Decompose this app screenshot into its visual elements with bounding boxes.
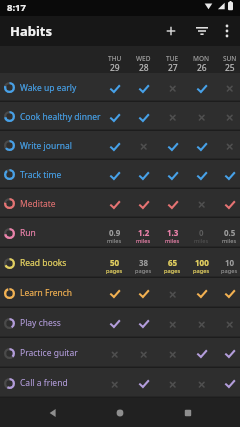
- staticText: 65: [168, 257, 178, 268]
- button[interactable]: [215, 189, 240, 218]
- button[interactable]: 0.9: [100, 218, 129, 248]
- button[interactable]: [100, 131, 129, 160]
- button[interactable]: 100: [187, 248, 216, 278]
- button[interactable]: 1.3: [158, 218, 187, 248]
- button[interactable]: [129, 368, 158, 398]
- staticText: miles: [165, 237, 180, 245]
- button[interactable]: 10: [215, 248, 240, 278]
- button[interactable]: Wake up early: [0, 73, 240, 102]
- staticText: SUN: [223, 54, 237, 63]
- button[interactable]: 1.2: [129, 218, 158, 248]
- staticText: 1.2: [138, 227, 150, 238]
- staticText: pages: [164, 267, 181, 275]
- button[interactable]: Read books: [0, 248, 240, 278]
- button[interactable]: [42, 402, 64, 424]
- button[interactable]: [215, 368, 240, 398]
- button[interactable]: [158, 308, 187, 338]
- button[interactable]: Track time: [0, 160, 240, 189]
- button[interactable]: [215, 102, 240, 131]
- button[interactable]: [187, 368, 216, 398]
- button[interactable]: [109, 402, 131, 424]
- staticText: WED: [136, 54, 151, 63]
- staticText: 50: [110, 257, 120, 268]
- button[interactable]: [100, 278, 129, 308]
- button[interactable]: [187, 189, 216, 218]
- button[interactable]: [215, 308, 240, 338]
- staticText: Cook healthy dinner: [20, 111, 101, 123]
- staticText: Meditate: [20, 198, 56, 210]
- staticText: 0: [199, 227, 204, 238]
- button[interactable]: [158, 131, 187, 160]
- button[interactable]: [100, 308, 129, 338]
- button[interactable]: [187, 338, 216, 368]
- button[interactable]: [129, 278, 158, 308]
- button[interactable]: 0.5: [215, 218, 240, 248]
- button[interactable]: [215, 73, 240, 102]
- button[interactable]: [129, 189, 158, 218]
- button[interactable]: Play chess: [0, 308, 240, 338]
- button[interactable]: [100, 102, 129, 131]
- button[interactable]: [159, 19, 183, 43]
- button[interactable]: [100, 189, 129, 218]
- staticText: Run: [20, 227, 36, 239]
- button[interactable]: [158, 368, 187, 398]
- staticText: MON: [193, 54, 210, 63]
- button[interactable]: [129, 308, 158, 338]
- button[interactable]: [215, 338, 240, 368]
- button[interactable]: Learn French: [0, 278, 240, 308]
- button[interactable]: [158, 160, 187, 189]
- staticText: Wake up early: [20, 82, 77, 94]
- button[interactable]: [187, 278, 216, 308]
- button[interactable]: [158, 189, 187, 218]
- button[interactable]: [158, 278, 187, 308]
- button[interactable]: [187, 160, 216, 189]
- button[interactable]: [158, 338, 187, 368]
- button[interactable]: 65: [158, 248, 187, 278]
- button[interactable]: 38: [129, 248, 158, 278]
- staticText: TUE: [166, 54, 179, 63]
- button[interactable]: [187, 308, 216, 338]
- button[interactable]: [129, 102, 158, 131]
- button[interactable]: [100, 368, 129, 398]
- button[interactable]: Call a friend: [0, 368, 240, 398]
- button[interactable]: [190, 19, 214, 43]
- staticText: 0.5: [224, 227, 236, 238]
- staticText: Play chess: [20, 317, 61, 329]
- button[interactable]: [215, 19, 239, 43]
- button[interactable]: Run: [0, 218, 240, 248]
- button[interactable]: [129, 73, 158, 102]
- button[interactable]: [129, 338, 158, 368]
- button[interactable]: [215, 160, 240, 189]
- button[interactable]: [215, 131, 240, 160]
- button[interactable]: [129, 131, 158, 160]
- button[interactable]: [100, 73, 129, 102]
- staticText: Practice guitar: [20, 347, 78, 359]
- staticText: miles: [222, 237, 237, 245]
- button[interactable]: [158, 102, 187, 131]
- staticText: Write journal: [20, 140, 72, 152]
- staticText: 25: [225, 62, 235, 74]
- button[interactable]: [177, 402, 199, 424]
- staticText: miles: [194, 237, 209, 245]
- button[interactable]: Meditate: [0, 189, 240, 218]
- button[interactable]: [158, 73, 187, 102]
- button[interactable]: [129, 160, 158, 189]
- staticText: Read books: [20, 257, 67, 269]
- button[interactable]: [187, 73, 216, 102]
- staticText: 26: [197, 62, 207, 74]
- button[interactable]: [187, 102, 216, 131]
- button[interactable]: [100, 338, 129, 368]
- staticText: 10: [225, 257, 235, 268]
- staticText: 8:17: [7, 1, 26, 14]
- staticText: pages: [193, 267, 210, 275]
- button[interactable]: Cook healthy dinner: [0, 102, 240, 131]
- staticText: Track time: [20, 169, 62, 181]
- button[interactable]: 50: [100, 248, 129, 278]
- button[interactable]: [187, 131, 216, 160]
- button[interactable]: 0: [187, 218, 216, 248]
- button[interactable]: Write journal: [0, 131, 240, 160]
- staticText: pages: [135, 267, 152, 275]
- button[interactable]: [215, 278, 240, 308]
- button[interactable]: Practice guitar: [0, 338, 240, 368]
- button[interactable]: [100, 160, 129, 189]
